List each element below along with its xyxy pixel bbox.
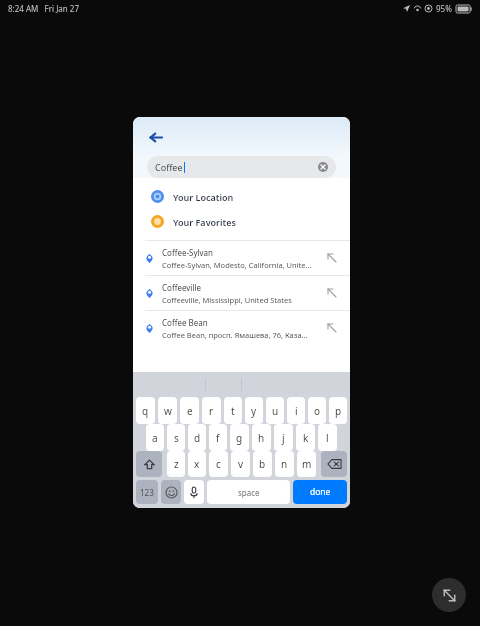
staticText: v	[238, 457, 244, 471]
staticText: 123	[140, 487, 154, 498]
staticText: Coffeeville	[162, 282, 202, 293]
staticText: Coffee-Sylvan, Modesto, California, Unit…	[162, 260, 312, 270]
button[interactable]: Clear text	[316, 160, 330, 174]
button[interactable]: e	[180, 397, 199, 424]
button[interactable]: Emoji	[161, 480, 181, 504]
other: Backspace	[328, 459, 341, 469]
button[interactable]: x	[188, 451, 206, 477]
staticText: q	[142, 404, 149, 418]
staticText: w	[164, 404, 172, 418]
staticText: Coffee Bean	[162, 317, 208, 328]
staticText: space	[238, 487, 260, 498]
button[interactable]: Back	[143, 125, 167, 149]
staticText: Coffeeville, Mississippi, United States	[162, 295, 292, 305]
staticText: f	[216, 431, 220, 445]
staticText: b	[259, 457, 266, 471]
button[interactable]: s	[167, 424, 185, 451]
button[interactable]: d	[188, 424, 206, 451]
staticText: i	[295, 404, 298, 418]
button[interactable]: Your Favorites	[133, 209, 350, 234]
staticText: n	[281, 457, 288, 471]
staticText: x	[194, 457, 200, 471]
button[interactable]: t	[224, 397, 242, 424]
button[interactable]: l	[318, 424, 337, 451]
button[interactable]: Shift	[136, 451, 162, 477]
button[interactable]: Coffee Bean	[133, 311, 350, 345]
staticText: k	[303, 431, 309, 445]
staticText: t	[231, 404, 235, 418]
staticText: done	[310, 486, 331, 498]
staticText: Coffee-Sylvan	[162, 247, 214, 258]
button[interactable]: Resize window	[432, 578, 466, 612]
staticText: l	[326, 431, 329, 445]
button[interactable]: r	[202, 397, 221, 424]
button[interactable]: h	[252, 424, 271, 451]
staticText: y	[251, 404, 257, 418]
button[interactable]: Fill query	[326, 322, 338, 334]
staticText: d	[194, 431, 201, 445]
other: Shift	[144, 459, 155, 470]
button[interactable]: Backspace	[321, 451, 347, 477]
staticText: j	[282, 431, 285, 445]
button[interactable]: f	[209, 424, 227, 451]
button[interactable]: v	[231, 451, 250, 477]
button[interactable]: 123	[136, 480, 158, 504]
staticText: Your Favorites	[173, 216, 236, 228]
staticText: s	[174, 431, 179, 445]
button[interactable]: u	[266, 397, 284, 424]
staticText: a	[152, 431, 158, 445]
button[interactable]: Voice input	[184, 480, 204, 504]
button[interactable]: a	[146, 424, 164, 451]
button[interactable]: Coffee	[147, 156, 336, 178]
button[interactable]: c	[209, 451, 228, 477]
staticText: e	[187, 404, 193, 418]
button[interactable]: w	[158, 397, 177, 424]
staticText: p	[335, 404, 342, 418]
staticText: h	[258, 431, 265, 445]
button[interactable]: space	[207, 480, 290, 504]
staticText: g	[236, 431, 243, 445]
staticText: u	[272, 404, 279, 418]
staticText: r	[209, 404, 214, 418]
staticText: 95%	[436, 3, 452, 14]
button[interactable]: g	[230, 424, 249, 451]
button[interactable]: b	[253, 451, 272, 477]
button[interactable]: Coffee-Sylvan	[133, 241, 350, 275]
other: Emoji	[166, 487, 177, 498]
button[interactable]: Your Location	[133, 184, 350, 209]
button[interactable]: done	[293, 480, 347, 504]
staticText: Coffee	[155, 161, 183, 173]
button[interactable]: k	[296, 424, 315, 451]
button[interactable]: z	[167, 451, 185, 477]
staticText: o	[314, 404, 321, 418]
staticText: Coffee Bean, просп. Ямашева, 76, Каза…	[162, 330, 308, 340]
staticText: 8:24 AM Fri Jan 27	[8, 3, 80, 14]
staticText: m	[302, 457, 312, 471]
button[interactable]: o	[308, 397, 326, 424]
button[interactable]: i	[287, 397, 305, 424]
button[interactable]: Fill query	[326, 287, 338, 299]
button[interactable]: m	[297, 451, 316, 477]
button[interactable]: j	[274, 424, 293, 451]
button[interactable]: n	[275, 451, 294, 477]
button[interactable]: Coffeeville	[133, 276, 350, 310]
button[interactable]: y	[245, 397, 263, 424]
staticText: Your Location	[173, 191, 234, 203]
button[interactable]: Fill query	[326, 252, 338, 264]
button[interactable]: q	[136, 397, 155, 424]
button[interactable]: p	[329, 397, 347, 424]
staticText: c	[216, 457, 221, 471]
staticText: z	[174, 457, 179, 471]
